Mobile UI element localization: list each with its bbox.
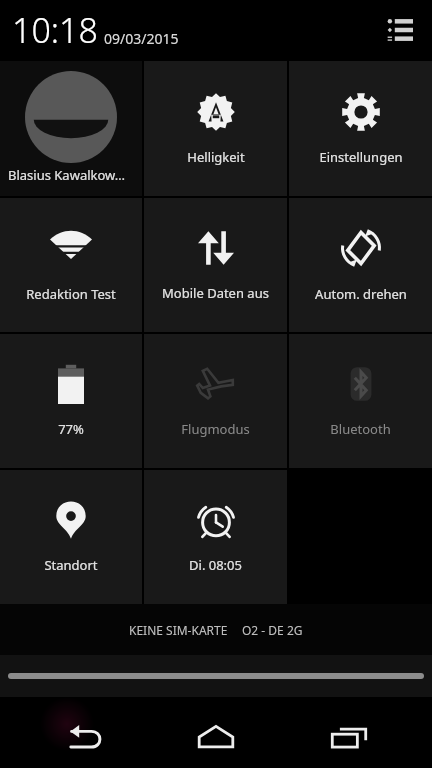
- staticText: Blasius Kawalkow…: [8, 166, 126, 184]
- staticText: 10:18: [12, 7, 98, 53]
- button[interactable]: 77%: [0, 334, 142, 468]
- button[interactable]: [8, 673, 424, 679]
- button[interactable]: Bluetooth: [289, 334, 432, 468]
- button[interactable]: Home: [166, 705, 266, 768]
- staticText: Flugmodus: [181, 420, 250, 438]
- staticText: 77%: [58, 420, 84, 438]
- staticText: Helligkeit: [187, 148, 245, 166]
- staticText: Redaktion Test: [26, 285, 116, 303]
- button[interactable]: Quick settings list: [378, 8, 422, 52]
- button[interactable]: Mobile Daten aus: [144, 198, 287, 332]
- staticText: Autom. drehen: [315, 285, 407, 303]
- button[interactable]: Redaktion Test: [0, 198, 142, 332]
- button[interactable]: Standort: [0, 470, 142, 604]
- staticText: KEINE SIM-KARTE: [129, 622, 228, 638]
- button[interactable]: Helligkeit: [144, 61, 287, 196]
- button[interactable]: Blasius Kawalkow…: [0, 61, 142, 196]
- staticText: 09/03/2015: [104, 29, 179, 48]
- button[interactable]: Back: [33, 705, 133, 768]
- button[interactable]: Einstellungen: [289, 61, 432, 196]
- staticText: Di. 08:05: [189, 556, 242, 574]
- button[interactable]: Di. 08:05: [144, 470, 287, 604]
- button[interactable]: Recent apps: [299, 705, 399, 768]
- staticText: Mobile Daten aus: [162, 284, 269, 302]
- staticText: Bluetooth: [330, 420, 391, 438]
- button[interactable]: Autom. drehen: [289, 198, 432, 332]
- staticText: Standort: [44, 556, 98, 574]
- staticText: Einstellungen: [319, 148, 403, 166]
- staticText: O2 - DE 2G: [242, 622, 303, 638]
- button[interactable]: Flugmodus: [144, 334, 287, 468]
